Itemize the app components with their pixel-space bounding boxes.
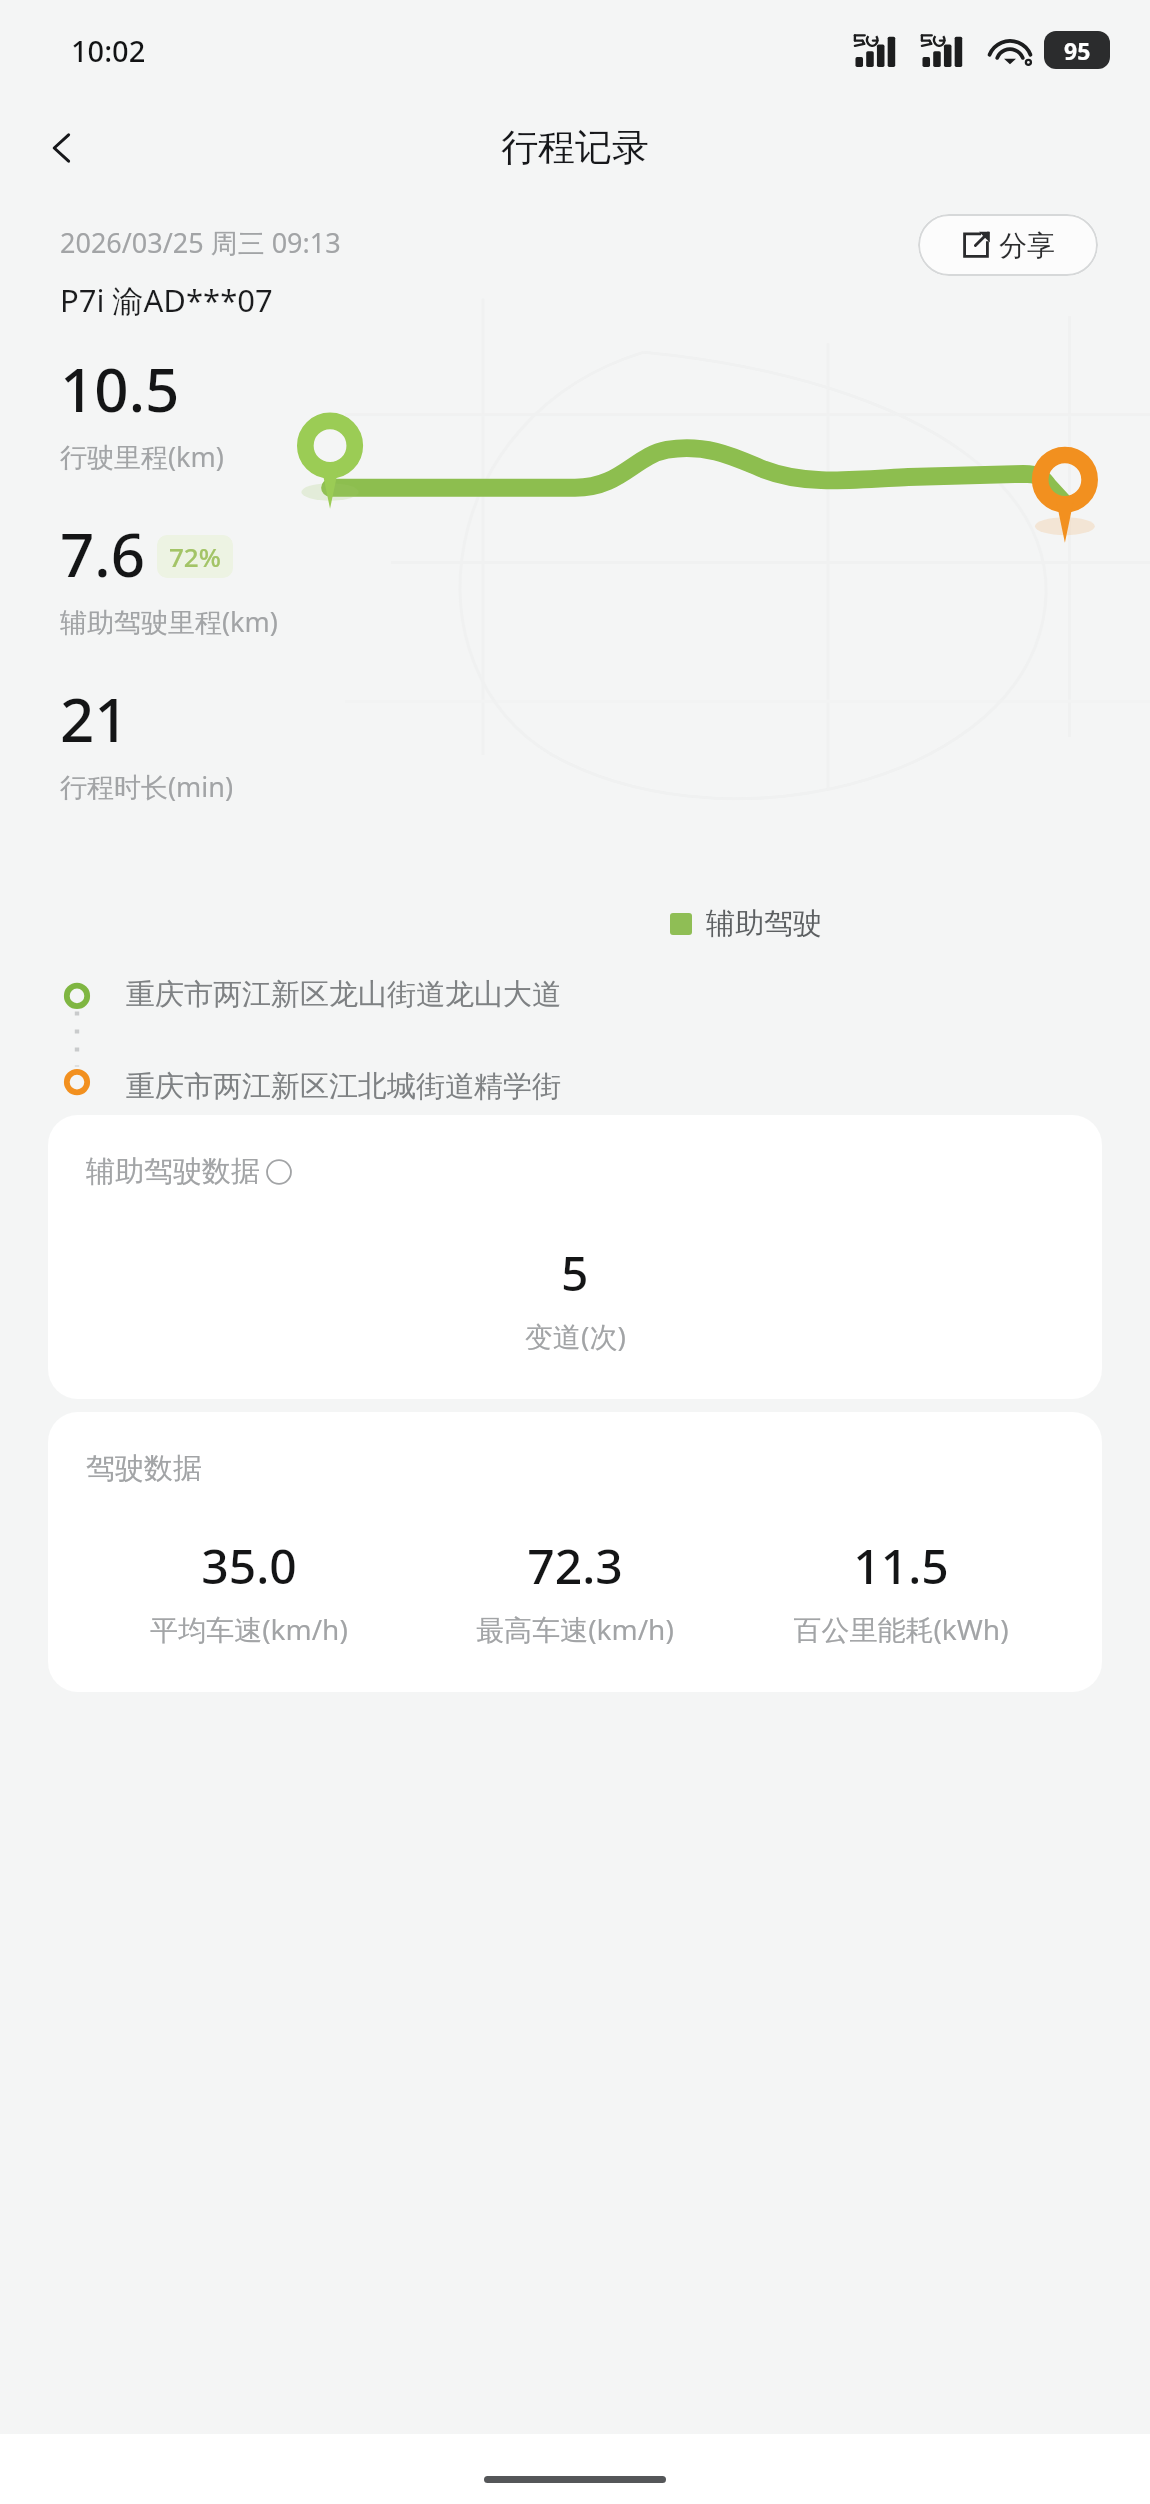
staticText: 辅助驾驶	[706, 905, 822, 942]
button[interactable]: 辅助驾驶数据	[48, 1115, 1102, 1399]
staticText: 变道(次)	[525, 1317, 626, 1355]
staticText: 72.3	[527, 1533, 623, 1598]
staticText: 重庆市两江新区龙山街道龙山大道	[126, 976, 561, 1013]
staticText: 最高车速(km/h)	[476, 1610, 674, 1648]
button[interactable]: 分享	[918, 214, 1098, 276]
staticText: 21	[60, 678, 129, 760]
staticText: 35.0	[201, 1533, 297, 1598]
staticText: 5	[561, 1240, 589, 1305]
staticText: 行驶里程(km)	[60, 438, 224, 475]
staticText: 11.5	[853, 1533, 949, 1598]
staticText: 95	[1064, 35, 1091, 66]
staticText: 分享	[999, 228, 1055, 263]
staticText: 百公里能耗(kWh)	[793, 1610, 1009, 1648]
button[interactable]: 驾驶数据	[48, 1412, 1102, 1692]
staticText: P7i 渝AD***07	[60, 279, 273, 321]
staticText: 辅助驾驶里程(km)	[60, 603, 278, 640]
staticText: 驾驶数据	[86, 1450, 202, 1487]
staticText: 平均车速(km/h)	[150, 1610, 348, 1648]
button[interactable]: Back	[34, 120, 90, 176]
staticText: 行程时长(min)	[60, 768, 234, 805]
staticText: 辅助驾驶数据	[86, 1153, 260, 1190]
staticText: 行程记录	[501, 124, 649, 171]
staticText: 72%	[169, 539, 221, 574]
staticText: 10.5	[60, 348, 180, 430]
staticText: 重庆市两江新区江北城街道精学街	[126, 1068, 561, 1105]
staticText: 10:02	[71, 31, 146, 70]
staticText: 7.6	[60, 513, 145, 595]
staticText: 2026/03/25 周三 09:13	[60, 224, 341, 261]
